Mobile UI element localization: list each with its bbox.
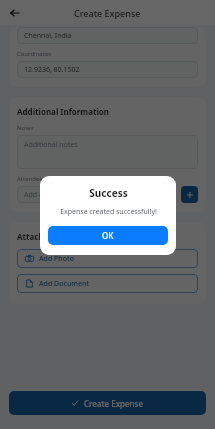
staticText: Notes <box>17 124 34 132</box>
button[interactable]: 12.9236, 80.1502 <box>17 61 198 78</box>
button[interactable]: Add Document <box>17 274 198 293</box>
button[interactable]: OK <box>48 226 168 245</box>
staticText: 12.9236, 80.1502 <box>24 65 80 75</box>
staticText: Create Expense <box>84 398 144 409</box>
staticText: Add Document <box>39 279 90 289</box>
staticText: Success <box>89 186 128 200</box>
staticText: Attachments <box>17 231 69 242</box>
button[interactable]: Add attendee <box>181 186 198 203</box>
button[interactable]: Dismiss dialog <box>0 0 215 429</box>
staticText: Add Photo <box>39 254 74 264</box>
button[interactable]: Additional notes <box>17 135 198 169</box>
staticText: Chennai, India <box>24 31 72 41</box>
staticText: Add attendee <box>24 190 69 200</box>
staticText: Attendees <box>17 175 46 183</box>
staticText: Additional notes <box>24 140 78 150</box>
staticText: Coordinates <box>17 50 52 58</box>
button[interactable]: Chennai, India <box>17 27 198 44</box>
staticText: Expense created successfully! <box>60 207 157 217</box>
button[interactable]: Back <box>6 4 24 22</box>
staticText: Create Expense <box>74 7 141 19</box>
button[interactable]: Add attendee <box>17 186 176 203</box>
button[interactable]: Add Photo <box>17 249 198 268</box>
button[interactable]: Create Expense <box>9 391 206 415</box>
staticText: OK <box>102 230 114 241</box>
staticText: Additional Information <box>17 106 109 117</box>
